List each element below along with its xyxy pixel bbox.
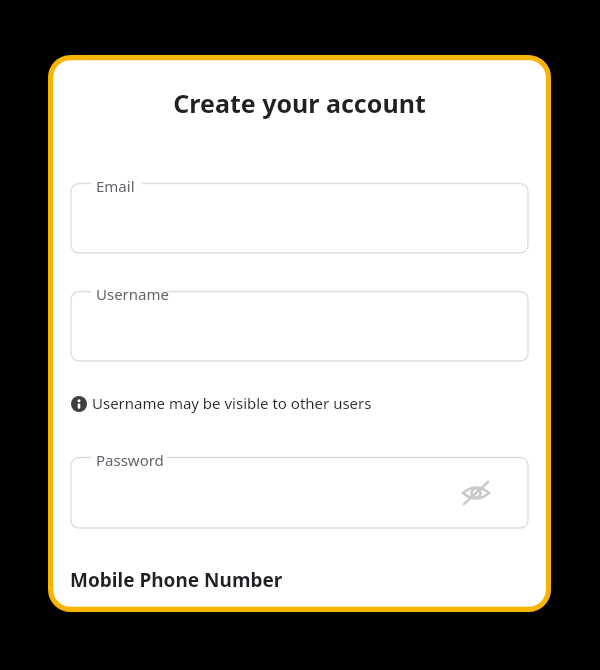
staticText: Username [96, 284, 169, 304]
staticText: Create your account [48, 86, 551, 643]
staticText: Mobile Phone Number [70, 567, 283, 593]
staticText: Password [96, 450, 164, 470]
button[interactable]: Username [71, 284, 528, 361]
button[interactable]: Email [71, 176, 528, 253]
button[interactable]: Password [71, 450, 528, 528]
button[interactable]: Show password [458, 475, 494, 511]
staticText: Username may be visible to other users [92, 393, 372, 413]
staticText: Email [96, 176, 135, 196]
